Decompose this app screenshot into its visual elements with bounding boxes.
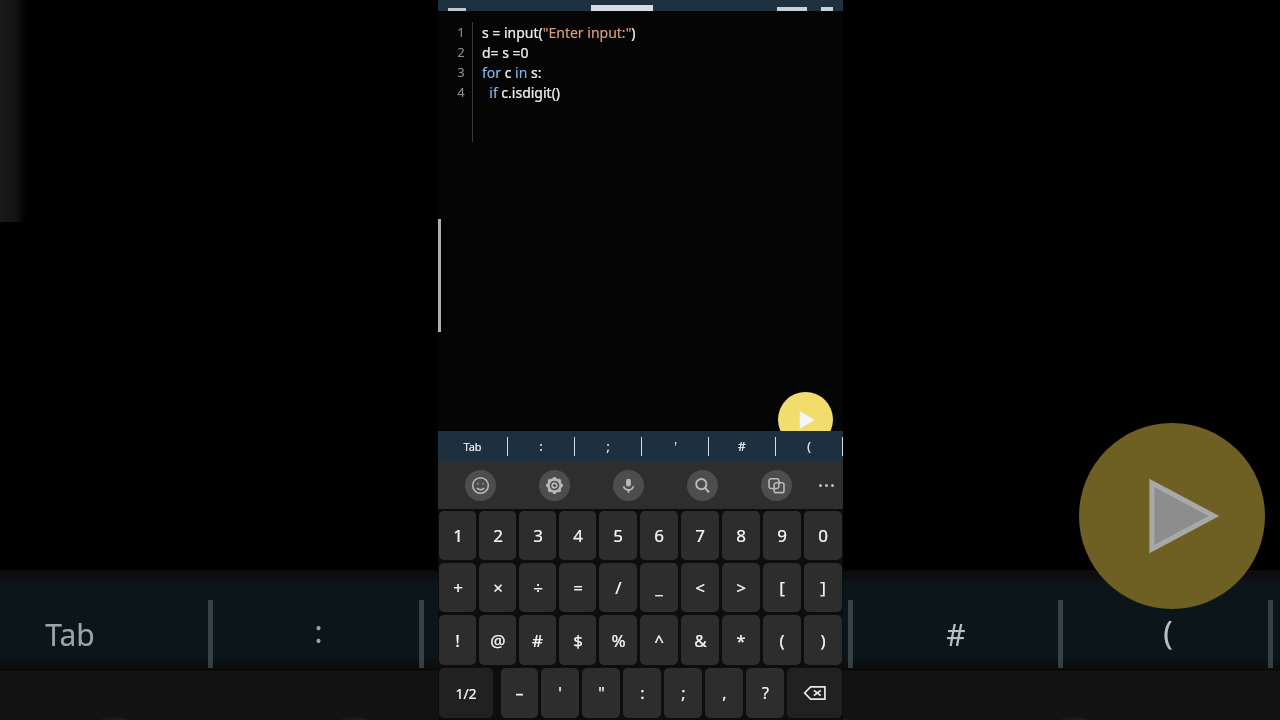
button[interactable]: Settings [539, 470, 570, 501]
button[interactable]: * [722, 615, 760, 665]
button[interactable]: + [439, 563, 476, 612]
staticText: * [736, 629, 746, 652]
staticText: ) [820, 629, 826, 652]
staticText: d= s =0 [482, 43, 529, 62]
staticText: 6 [654, 524, 664, 547]
button[interactable]: Search [687, 470, 718, 501]
staticText: 4 [573, 524, 583, 547]
button[interactable]: ( [776, 431, 842, 461]
button[interactable]: : [508, 431, 574, 461]
button[interactable]: @ [479, 615, 516, 665]
staticText: : [640, 682, 645, 704]
button[interactable]: " [582, 668, 620, 718]
button[interactable]: = [559, 563, 596, 612]
staticText: ] [820, 576, 826, 599]
button[interactable]: – [501, 668, 538, 718]
button[interactable]: Menu [438, 0, 843, 11]
button[interactable]: # [709, 431, 775, 461]
staticText: ^ [654, 629, 664, 652]
button[interactable]: ; [664, 668, 702, 718]
staticText: for c in s: [482, 63, 542, 82]
staticText: ( [1163, 611, 1173, 655]
button[interactable]: ; [575, 431, 641, 461]
staticText: Tab [45, 614, 95, 655]
button[interactable]: ^ [640, 615, 678, 665]
button[interactable]: 7 [681, 511, 719, 560]
button[interactable]: 2 [479, 511, 516, 560]
staticText: [ [779, 576, 785, 599]
button[interactable]: 3 [519, 511, 556, 560]
button[interactable]: _ [640, 563, 678, 612]
button[interactable]: [ [763, 563, 801, 612]
staticText: $ [573, 629, 583, 652]
button[interactable]: ] [804, 563, 842, 612]
button[interactable]: Translate [761, 470, 792, 501]
button[interactable]: & [681, 615, 719, 665]
button[interactable]: ' [642, 431, 708, 461]
button[interactable]: ' [541, 668, 579, 718]
button[interactable]: ÷ [519, 563, 556, 612]
staticText: Tab [463, 439, 482, 454]
staticText: 2 [457, 43, 465, 61]
button[interactable]: Emoji [465, 470, 496, 501]
staticText: s = input("Enter input:") [482, 23, 636, 42]
staticText: = [573, 576, 583, 599]
staticText: / [615, 576, 622, 599]
button[interactable]: Backspace [787, 668, 842, 718]
button[interactable]: ! [439, 615, 476, 665]
staticText: × [493, 576, 503, 599]
button[interactable]: Voice input [613, 470, 644, 501]
button[interactable]: 1/2 [439, 668, 493, 718]
staticText: & [694, 629, 707, 652]
staticText: % [611, 629, 626, 652]
staticText: 4 [457, 83, 465, 101]
button[interactable]: Run [778, 392, 833, 447]
staticText: < [695, 576, 705, 599]
button[interactable]: Tab [438, 431, 507, 461]
staticText: " [598, 682, 605, 704]
button[interactable]: ( [763, 615, 801, 665]
button[interactable]: 5 [599, 511, 637, 560]
staticText: 1 [457, 23, 465, 41]
button[interactable]: 1 [439, 511, 476, 560]
staticText: _ [655, 576, 663, 599]
staticText: ; [606, 438, 610, 454]
button[interactable]: 4 [559, 511, 596, 560]
staticText: + [453, 576, 463, 599]
staticText: 7 [695, 524, 705, 547]
button[interactable]: ) [804, 615, 842, 665]
button[interactable]: , [705, 668, 743, 718]
button[interactable]: × [479, 563, 516, 612]
staticText: ' [674, 438, 677, 454]
staticText: 5 [613, 524, 623, 547]
staticText: 1/2 [455, 684, 477, 703]
staticText: ( [807, 438, 811, 454]
staticText: 3 [457, 63, 465, 81]
button[interactable]: 8 [722, 511, 760, 560]
staticText: ; [681, 682, 686, 704]
button[interactable]: / [599, 563, 637, 612]
button[interactable]: 0 [804, 511, 842, 560]
staticText: 0 [818, 524, 828, 547]
staticText: : [314, 611, 323, 652]
staticText: > [736, 576, 746, 599]
button[interactable]: # [519, 615, 556, 665]
staticText: ? [762, 682, 769, 704]
staticText: : [539, 438, 543, 454]
button[interactable]: More [813, 461, 839, 509]
staticText: ÷ [533, 576, 543, 599]
staticText: 1 [453, 524, 463, 547]
button[interactable]: > [722, 563, 760, 612]
staticText: , [722, 682, 727, 704]
button[interactable]: 6 [640, 511, 678, 560]
button[interactable]: % [599, 615, 637, 665]
staticText: 2 [493, 524, 503, 547]
button[interactable]: ? [746, 668, 784, 718]
button[interactable]: < [681, 563, 719, 612]
button[interactable]: : [623, 668, 661, 718]
button[interactable]: 9 [763, 511, 801, 560]
button[interactable]: $ [559, 615, 596, 665]
